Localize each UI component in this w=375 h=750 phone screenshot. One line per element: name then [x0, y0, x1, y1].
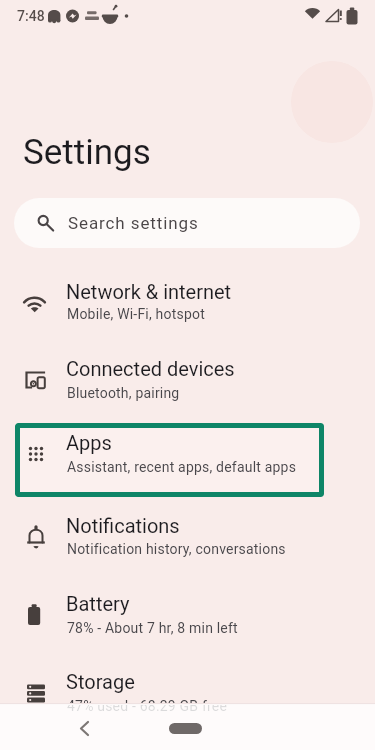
- staticText: 7:48: [17, 8, 45, 24]
- button[interactable]: [69, 714, 97, 742]
- button[interactable]: [0, 416, 375, 494]
- button[interactable]: [0, 572, 375, 650]
- button[interactable]: [169, 723, 202, 734]
- staticText: Network & internet: [66, 280, 232, 303]
- button[interactable]: [0, 260, 375, 338]
- staticText: Storage: [66, 670, 135, 693]
- button[interactable]: [0, 650, 375, 728]
- staticText: Bluetooth, pairing: [67, 385, 180, 401]
- staticText: Notification history, conversations: [67, 541, 286, 557]
- staticText: Connected devices: [66, 357, 235, 380]
- staticText: Mobile, Wi-Fi, hotspot: [67, 306, 205, 322]
- button[interactable]: [0, 338, 375, 416]
- staticText: 47% used - 68.29 GB free: [67, 698, 228, 714]
- staticText: Search settings: [68, 213, 199, 233]
- staticText: Battery: [66, 592, 130, 615]
- staticText: Settings: [23, 132, 151, 173]
- button[interactable]: Search settings: [14, 198, 360, 248]
- button[interactable]: [0, 494, 375, 572]
- staticText: 78% - About 7 hr, 8 min left: [67, 620, 238, 636]
- staticText: Notifications: [66, 514, 180, 537]
- staticText: Apps: [66, 431, 112, 454]
- staticText: Assistant, recent apps, default apps: [67, 459, 297, 475]
